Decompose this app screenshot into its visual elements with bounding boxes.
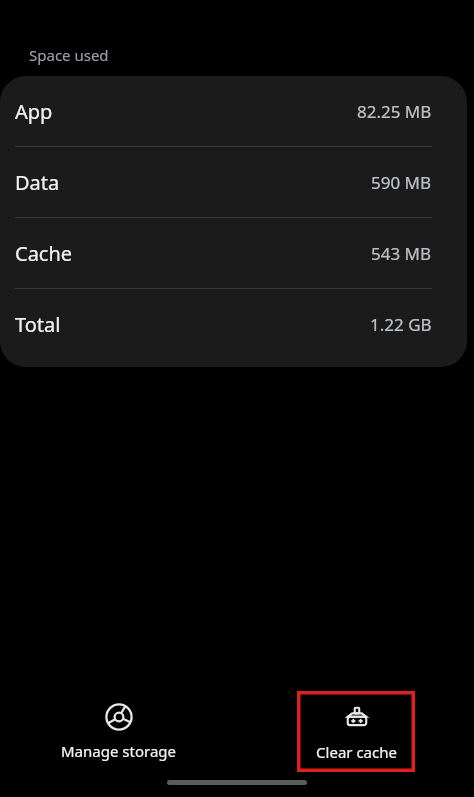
staticText: 543 MB — [371, 242, 432, 265]
staticText: Cache — [15, 240, 73, 267]
staticText: 82.25 MB — [357, 100, 432, 123]
staticText: Manage storage — [61, 741, 176, 761]
staticText: Total — [15, 311, 61, 338]
staticText: Clear cache — [316, 742, 397, 762]
button[interactable]: Total — [0, 289, 457, 359]
staticText: 1.22 GB — [370, 313, 432, 336]
button[interactable]: Cache — [0, 218, 457, 288]
staticText: Data — [15, 169, 60, 196]
button[interactable]: Data — [0, 147, 457, 217]
button[interactable]: Clear cache — [297, 691, 415, 772]
button[interactable]: App — [0, 76, 457, 146]
staticText: 590 MB — [371, 171, 432, 194]
staticText: App — [15, 98, 53, 125]
staticText: Space used — [29, 45, 109, 65]
button[interactable]: Manage storage — [0, 696, 237, 767]
